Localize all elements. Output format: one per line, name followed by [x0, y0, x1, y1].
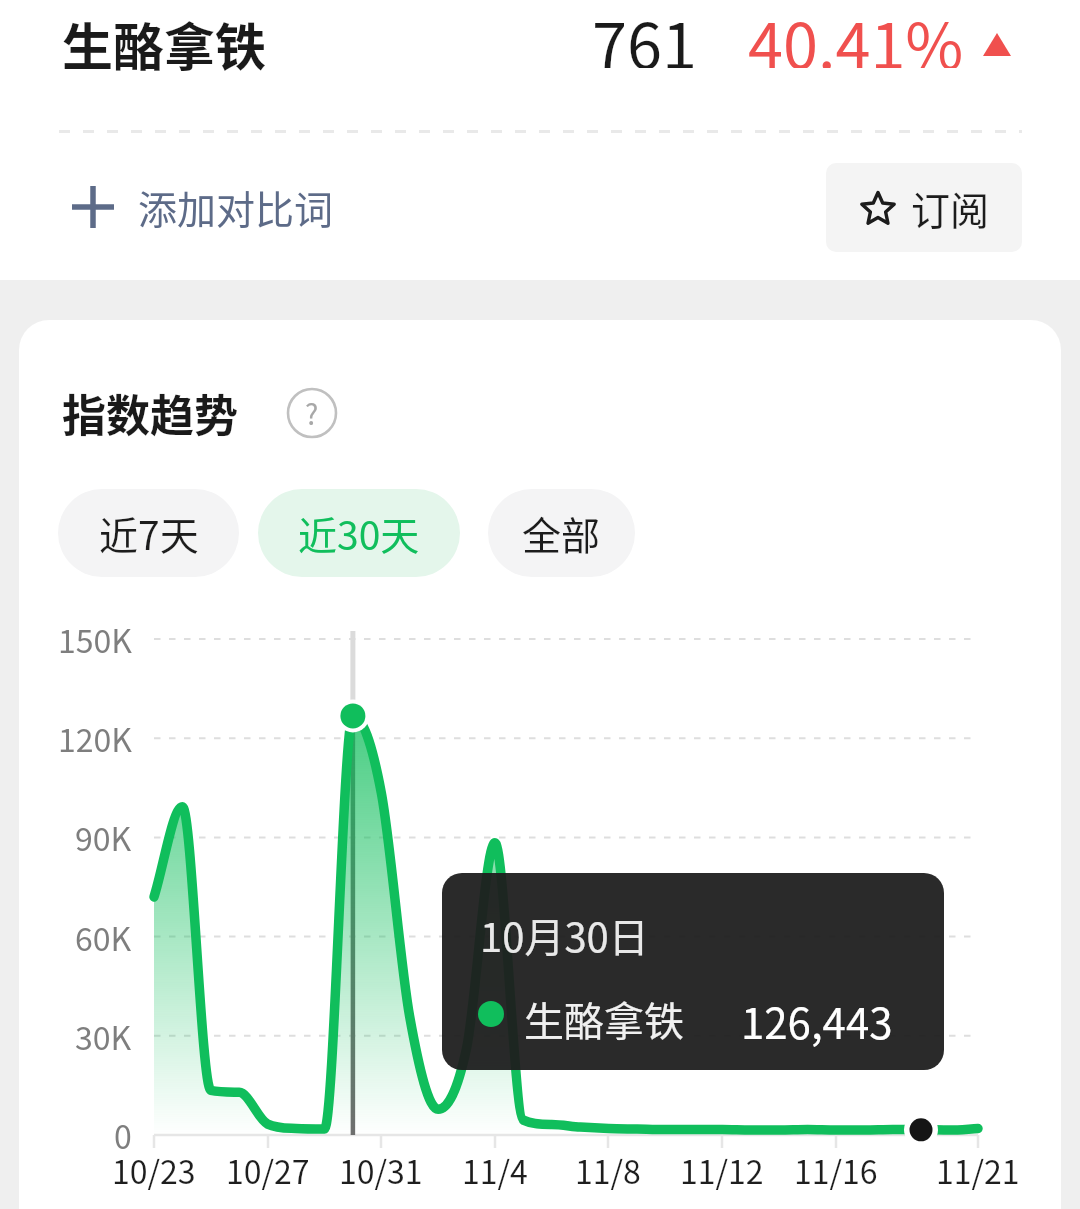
- staticText: 近30天: [298, 505, 420, 561]
- button[interactable]: Help: [286, 387, 338, 439]
- staticText: 11/16: [794, 1147, 878, 1191]
- button[interactable]: 添加对比词: [0, 163, 358, 251]
- staticText: 11/8: [575, 1147, 641, 1191]
- button[interactable]: 全部: [488, 489, 635, 577]
- staticText: 11/4: [462, 1147, 528, 1191]
- staticText: 全部: [522, 505, 601, 561]
- staticText: 生酪拿铁: [524, 990, 684, 1048]
- staticText: 指数趋势: [62, 381, 238, 445]
- staticText: 生酪拿铁: [62, 7, 267, 81]
- button[interactable]: Index trend chart: [0, 600, 1080, 1160]
- staticText: 11/12: [680, 1147, 764, 1191]
- staticText: 10/31: [339, 1147, 423, 1191]
- staticText: 120K: [58, 715, 132, 761]
- staticText: 添加对比词: [138, 179, 334, 235]
- staticText: 0: [114, 1112, 132, 1158]
- staticText: ?: [305, 393, 319, 434]
- staticText: 30K: [75, 1013, 132, 1059]
- staticText: 10/23: [112, 1147, 196, 1191]
- button[interactable]: 订阅: [826, 163, 1022, 252]
- staticText: 126,443: [741, 990, 893, 1051]
- staticText: 10月30日: [480, 906, 649, 964]
- button[interactable]: 近7天: [58, 489, 239, 577]
- staticText: 90K: [75, 814, 132, 860]
- staticText: 150K: [58, 616, 132, 662]
- staticText: 761: [592, 0, 697, 68]
- staticText: 60K: [75, 914, 132, 960]
- staticText: 10/27: [226, 1147, 310, 1191]
- button[interactable]: 近30天: [258, 489, 460, 577]
- staticText: 订阅: [911, 180, 990, 236]
- staticText: 11/21: [936, 1147, 1020, 1191]
- staticText: 40.41%: [748, 0, 964, 68]
- staticText: 近7天: [99, 505, 199, 561]
